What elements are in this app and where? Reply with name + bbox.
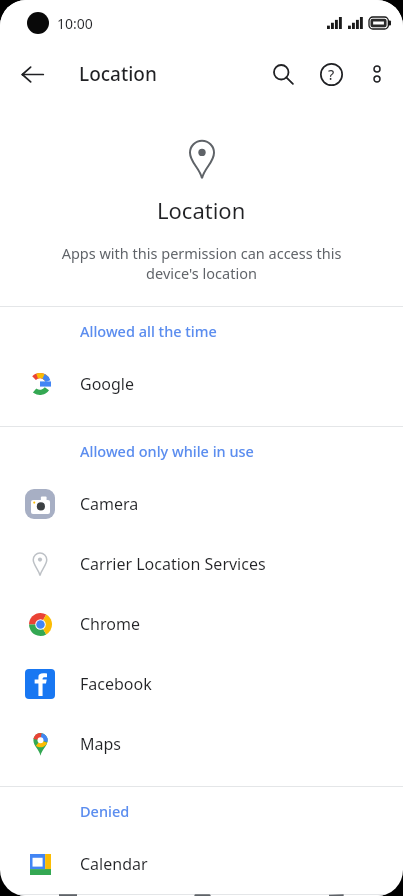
button[interactable]: Google <box>0 354 403 414</box>
button[interactable]: More options <box>355 52 399 96</box>
button[interactable]: Back <box>269 895 403 896</box>
staticText: Maps <box>80 733 121 755</box>
button[interactable]: Calendar <box>0 834 403 894</box>
staticText: ? <box>328 65 335 84</box>
staticText: Chrome <box>80 613 140 635</box>
staticText: Carrier Location Services <box>80 553 266 575</box>
button[interactable]: Facebook <box>0 654 403 714</box>
button[interactable]: Recent apps <box>0 895 135 896</box>
staticText: Location <box>157 195 246 225</box>
button[interactable]: Search <box>259 50 307 98</box>
staticText: Calendar <box>80 853 148 875</box>
staticText: Allowed all the time <box>80 321 217 341</box>
staticText: Denied <box>80 801 130 821</box>
button[interactable]: Back <box>8 50 56 98</box>
staticText: Location <box>79 61 157 87</box>
button[interactable]: Chrome <box>0 594 403 654</box>
staticText: Facebook <box>80 673 152 695</box>
staticText: Allowed only while in use <box>80 441 254 461</box>
button[interactable]: Maps <box>0 714 403 774</box>
button[interactable]: Camera <box>0 474 403 534</box>
button[interactable]: Home <box>135 895 269 896</box>
button[interactable]: Carrier Location Services <box>0 534 403 594</box>
button[interactable]: Help <box>307 50 355 98</box>
staticText: Apps with this permission can access thi… <box>38 243 365 284</box>
staticText: Camera <box>80 493 139 515</box>
staticText: Google <box>80 373 135 395</box>
staticText: 10:00 <box>57 14 93 33</box>
